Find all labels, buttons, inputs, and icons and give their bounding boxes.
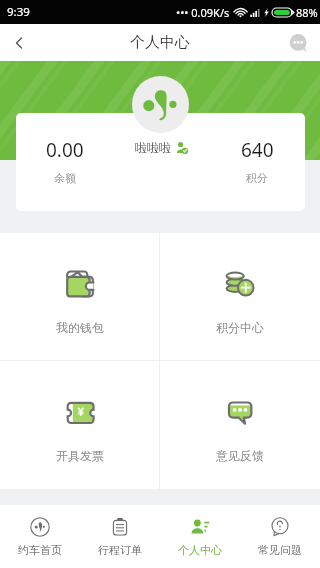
staticText: 个人中心 (130, 33, 190, 52)
button[interactable]: 我的钱包 (0, 233, 159, 360)
button[interactable]: 积分中心 (160, 233, 320, 360)
button[interactable]: 开具发票 (0, 361, 159, 489)
staticText: 约车首页 (18, 543, 62, 557)
staticText: 个人中心 (178, 543, 222, 557)
button[interactable]: 行程订单 (80, 505, 160, 568)
staticText: 行程订单 (98, 543, 142, 557)
button[interactable]: Back (0, 24, 37, 61)
staticText: 640 (241, 137, 274, 163)
button[interactable]: 约车首页 (0, 505, 80, 568)
button[interactable]: 个人中心 (160, 505, 240, 568)
staticText: 啦啦啦 (135, 140, 171, 155)
staticText: 积分中心 (216, 320, 264, 335)
button[interactable]: 意见反馈 (160, 361, 320, 489)
staticText: 常见问题 (258, 543, 302, 557)
staticText: ••• 0.09K/s (176, 5, 230, 20)
staticText: 积分 (246, 171, 268, 185)
staticText: 余额 (54, 171, 76, 185)
button[interactable]: Messages (284, 29, 312, 57)
staticText: 9:39 (7, 4, 30, 20)
staticText: 88% (296, 5, 318, 20)
staticText: 我的钱包 (56, 320, 104, 335)
staticText: 开具发票 (56, 448, 104, 463)
staticText: 0.00 (46, 137, 84, 163)
staticText: 意见反馈 (216, 448, 264, 463)
button[interactable]: 常见问题 (240, 505, 320, 568)
